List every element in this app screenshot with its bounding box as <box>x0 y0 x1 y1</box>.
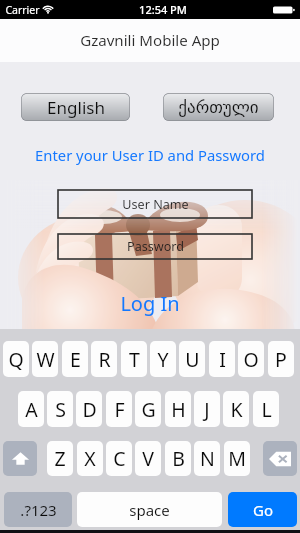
button[interactable]: Delete <box>263 441 297 476</box>
staticText: D <box>82 396 97 423</box>
button[interactable]: P <box>268 341 294 377</box>
button[interactable]: B <box>165 441 191 476</box>
staticText: Go <box>253 500 273 520</box>
staticText: C <box>113 445 126 472</box>
staticText: Z <box>54 445 66 472</box>
staticText: I <box>219 346 226 373</box>
staticText: English <box>47 96 105 119</box>
button[interactable]: space <box>77 492 222 527</box>
button[interactable]: G <box>135 391 161 427</box>
button[interactable]: M <box>224 441 250 476</box>
button[interactable]: Y <box>150 341 176 377</box>
staticText: U <box>185 346 200 373</box>
button[interactable]: T <box>121 341 147 377</box>
staticText: .?123 <box>20 500 57 520</box>
staticText: H <box>171 396 186 423</box>
button[interactable]: R <box>91 341 117 377</box>
staticText: ქართული <box>178 97 259 117</box>
staticText: Password <box>127 238 184 255</box>
button[interactable]: English <box>21 93 130 121</box>
staticText: T <box>129 346 140 373</box>
button[interactable]: U <box>179 341 205 377</box>
staticText: L <box>261 396 272 423</box>
button[interactable]: K <box>223 391 249 427</box>
button[interactable]: J <box>194 391 220 427</box>
staticText: O <box>243 346 259 373</box>
staticText: 12:54 PM <box>139 2 187 17</box>
button[interactable]: ქართული <box>163 93 274 121</box>
staticText: V <box>142 445 154 472</box>
button[interactable]: W <box>32 341 58 377</box>
button[interactable]: Go <box>228 492 297 527</box>
button[interactable]: Shift <box>3 441 37 476</box>
button[interactable]: N <box>194 441 220 476</box>
staticText: Enter your User ID and Password <box>35 145 265 165</box>
button[interactable]: V <box>135 441 161 476</box>
button[interactable]: L <box>253 391 279 427</box>
button[interactable]: Z <box>47 441 73 476</box>
staticText: User Name <box>122 196 189 213</box>
staticText: Q <box>8 346 24 373</box>
button[interactable]: X <box>77 441 103 476</box>
staticText: Y <box>157 346 169 373</box>
staticText: P <box>275 346 287 373</box>
staticText: space <box>129 500 170 520</box>
staticText: Log In <box>120 290 180 317</box>
staticText: R <box>98 346 111 373</box>
button[interactable]: .?123 <box>4 492 72 527</box>
staticText: F <box>114 396 125 423</box>
button[interactable]: User Name <box>58 190 252 218</box>
staticText: W <box>36 346 55 373</box>
staticText: G <box>141 396 156 423</box>
staticText: B <box>172 445 185 472</box>
button[interactable]: H <box>165 391 191 427</box>
staticText: E <box>70 346 81 373</box>
staticText: M <box>228 445 246 472</box>
staticText: K <box>230 396 243 423</box>
staticText: A <box>25 396 38 423</box>
button[interactable]: E <box>62 341 88 377</box>
button[interactable]: Q <box>3 341 29 377</box>
button[interactable]: I <box>209 341 235 377</box>
staticText: Carrier <box>5 3 40 17</box>
button[interactable]: D <box>76 391 102 427</box>
button[interactable]: Log In <box>120 290 180 317</box>
button[interactable]: O <box>238 341 264 377</box>
staticText: J <box>204 396 210 423</box>
button[interactable]: F <box>106 391 132 427</box>
staticText: S <box>55 396 66 423</box>
button[interactable]: A <box>18 391 44 427</box>
button[interactable]: S <box>47 391 73 427</box>
button[interactable]: C <box>106 441 132 476</box>
staticText: Gzavnili Mobile App <box>80 30 220 51</box>
staticText: X <box>84 445 96 472</box>
button[interactable]: Password <box>58 234 252 259</box>
staticText: N <box>200 445 215 472</box>
